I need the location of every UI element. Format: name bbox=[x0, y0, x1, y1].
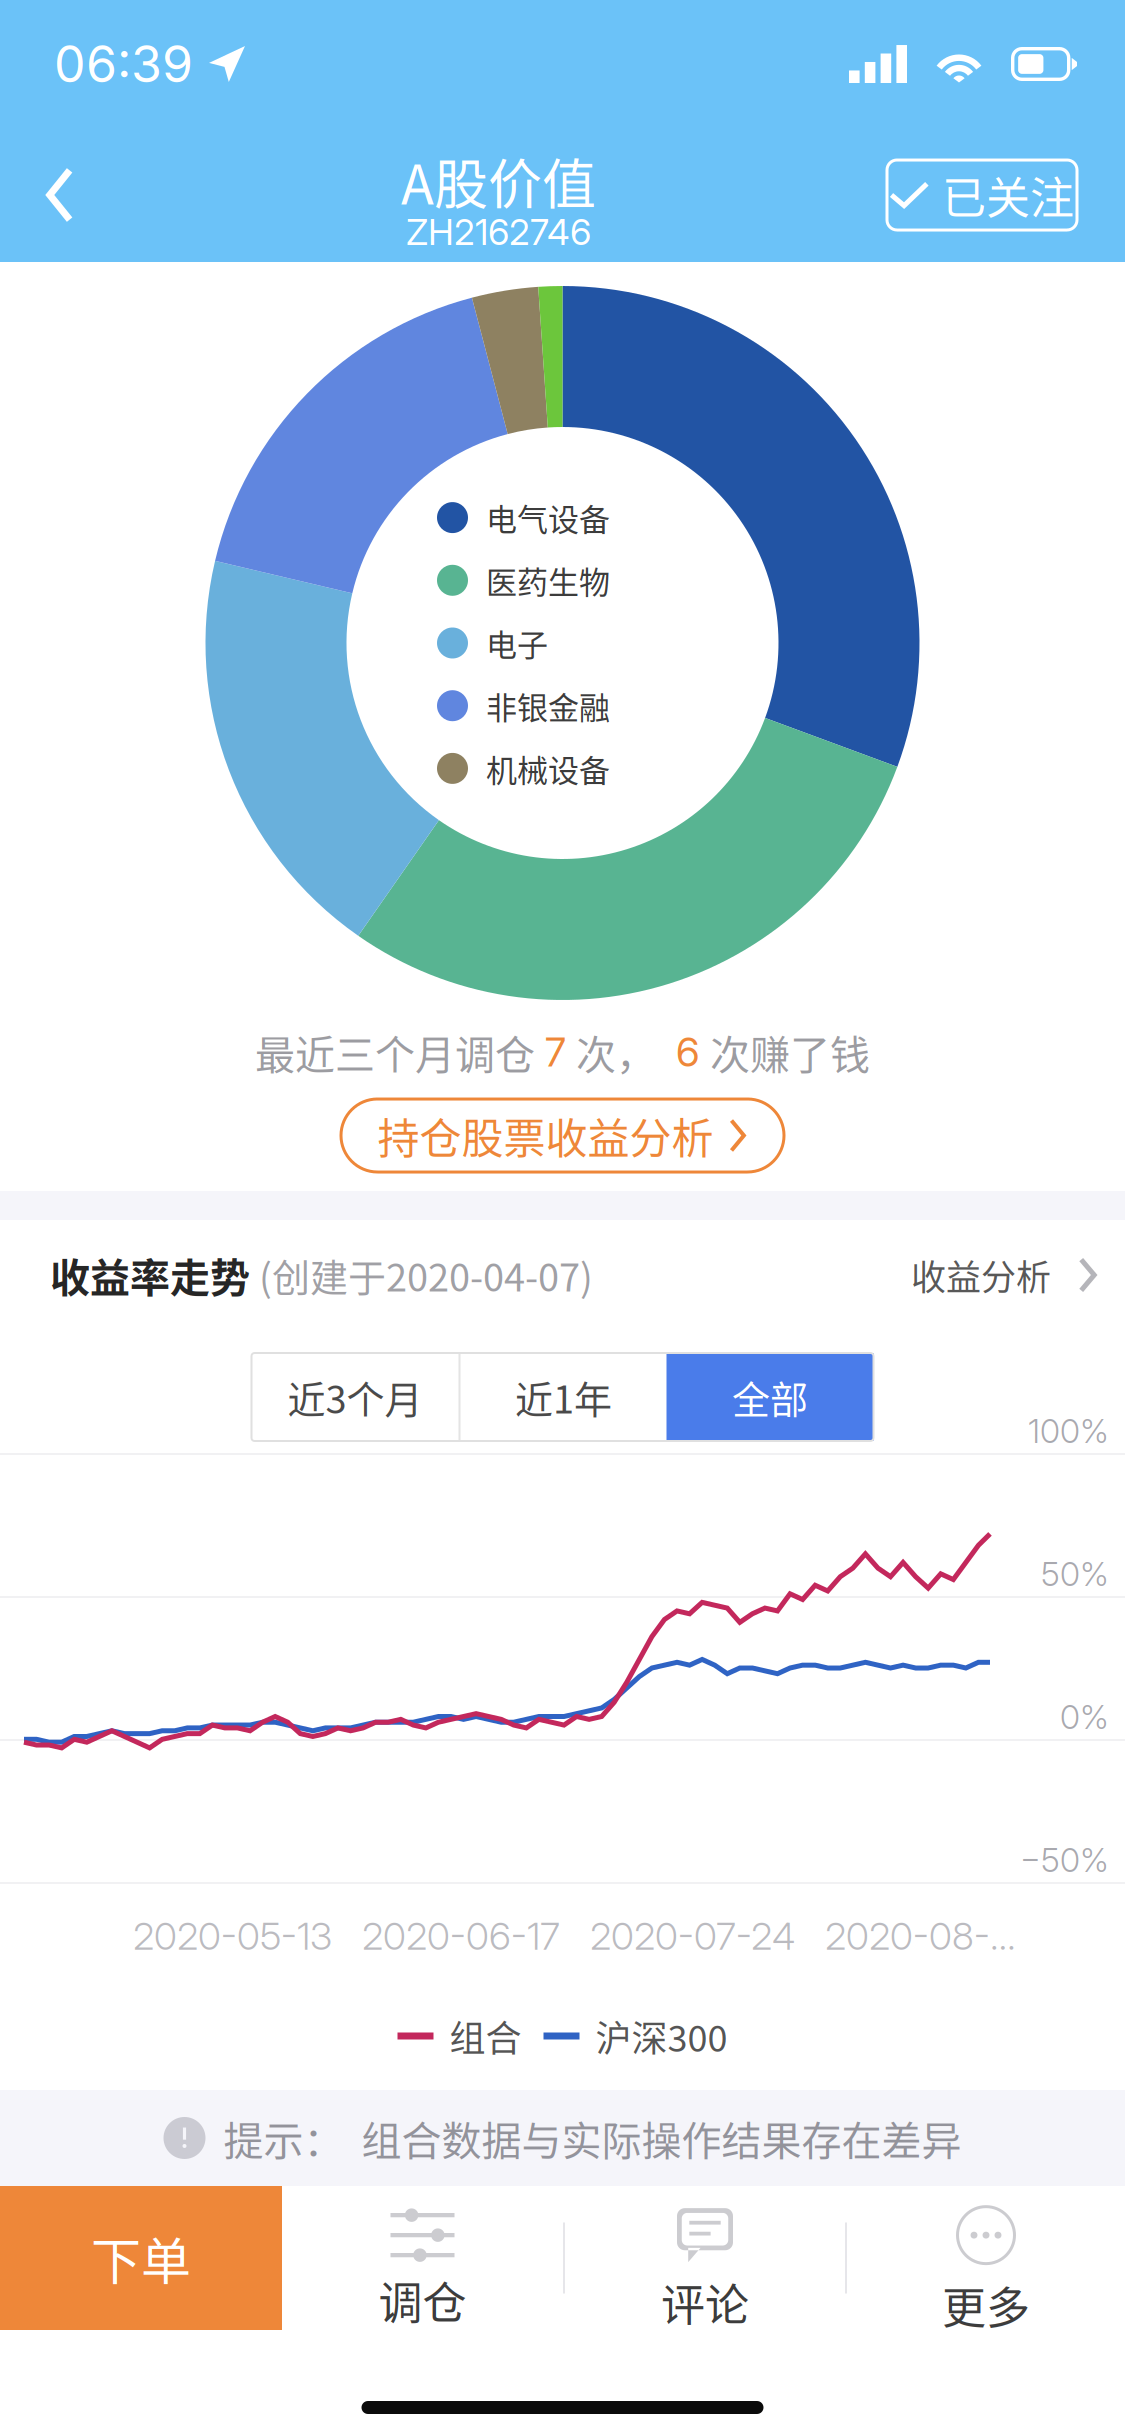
staticText: (创建于2020-04-07) bbox=[250, 1247, 593, 1302]
staticText: 2020-07-24 bbox=[590, 1913, 795, 1959]
staticText: 收益分析 bbox=[911, 1250, 1051, 1300]
staticText: 2020-06-17 bbox=[362, 1913, 560, 1959]
staticText: 2020-05-13 bbox=[133, 1913, 332, 1959]
button[interactable]: 已关注 bbox=[887, 160, 1077, 230]
staticText: −50% bbox=[1020, 1840, 1109, 1880]
staticText: 持仓股票收益分析 bbox=[377, 1105, 713, 1166]
staticText: 提示： 组合数据与实际操作结果存在差异 bbox=[205, 2109, 961, 2167]
staticText: 沪深300 bbox=[579, 2010, 727, 2062]
staticText: 组合 bbox=[433, 2010, 521, 2062]
button[interactable]: 近3个月 bbox=[251, 1353, 458, 1441]
staticText: 最近三个月调仓 bbox=[255, 1023, 535, 1081]
staticText: 近3个月 bbox=[287, 1369, 422, 1424]
staticText: 非银金融 bbox=[486, 683, 610, 728]
staticText: ZH2162746 bbox=[406, 210, 591, 254]
staticText: 近1年 bbox=[515, 1369, 612, 1424]
button[interactable]: 近1年 bbox=[460, 1353, 666, 1441]
staticText: 50% bbox=[1041, 1554, 1109, 1594]
staticText: 机械设备 bbox=[486, 746, 610, 791]
staticText: 全部 bbox=[732, 1369, 808, 1424]
staticText: 6 bbox=[656, 1028, 710, 1076]
staticText: 2020-08-… bbox=[825, 1913, 1016, 1959]
button[interactable]: 持仓股票收益分析 bbox=[341, 1099, 784, 1172]
staticText: 次， bbox=[576, 1023, 656, 1081]
staticText: 调仓 bbox=[378, 2268, 466, 2332]
staticText: 次赚了钱 bbox=[710, 1023, 870, 1081]
staticText: 医药生物 bbox=[486, 558, 610, 603]
button[interactable]: 调仓 bbox=[282, 2186, 563, 2330]
staticText: 100% bbox=[1028, 1411, 1109, 1451]
staticText: A股价值 bbox=[401, 142, 596, 220]
staticText: 已关注 bbox=[942, 163, 1074, 227]
staticText: 电子 bbox=[486, 621, 548, 665]
staticText: 评论 bbox=[661, 2270, 749, 2334]
button[interactable]: 更多 bbox=[847, 2186, 1125, 2330]
staticText: 0% bbox=[1060, 1697, 1109, 1737]
staticText: 更多 bbox=[942, 2273, 1030, 2337]
button[interactable]: 下单 bbox=[0, 2186, 282, 2330]
staticText: 下单 bbox=[91, 2222, 191, 2294]
button[interactable]: Back bbox=[0, 128, 110, 262]
staticText: 电气设备 bbox=[486, 495, 610, 540]
button[interactable]: 收益分析 bbox=[911, 1220, 1098, 1330]
button[interactable]: 全部 bbox=[666, 1353, 873, 1441]
staticText: 06:39 bbox=[54, 34, 193, 94]
staticText: 收益率走势 bbox=[50, 1246, 250, 1304]
staticText: 7 bbox=[535, 1028, 576, 1076]
button[interactable]: 评论 bbox=[565, 2186, 845, 2330]
